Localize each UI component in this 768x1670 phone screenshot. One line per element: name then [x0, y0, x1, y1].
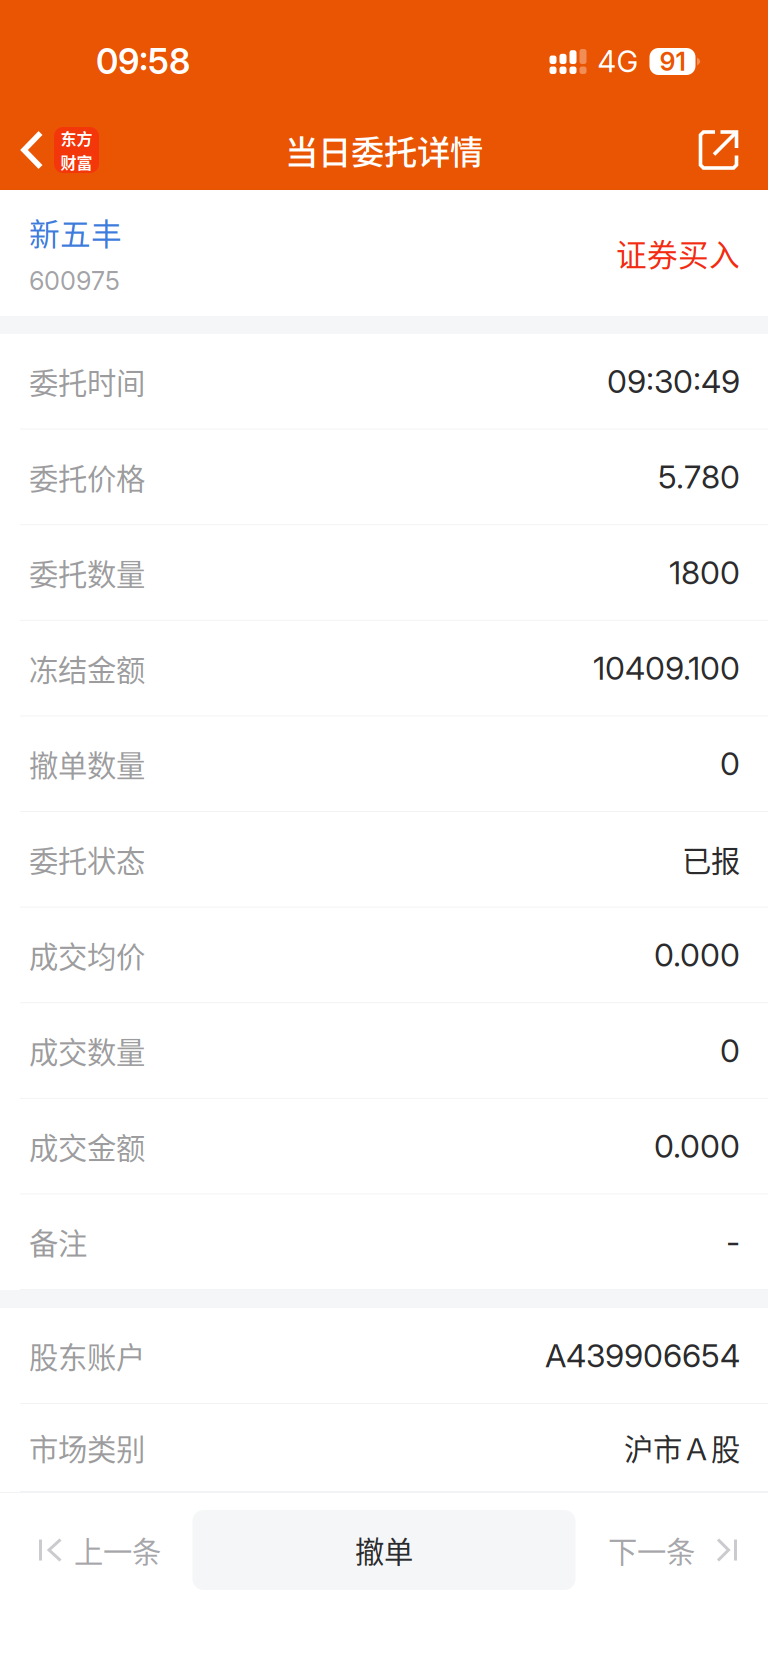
staticText: 成交均价	[29, 934, 145, 976]
staticText: 10409.100	[593, 649, 740, 687]
staticText: 沪市Ａ股	[624, 1426, 740, 1469]
staticText: 0.000	[654, 935, 740, 974]
staticText: 委托时间	[29, 360, 145, 403]
staticText: 备注	[29, 1220, 87, 1263]
staticText: 0	[720, 1031, 740, 1070]
staticText: -	[726, 1222, 740, 1261]
staticText: 撤单数量	[29, 742, 145, 785]
staticText: 股东账户	[29, 1334, 145, 1377]
button[interactable]: 下一条	[575, 1510, 768, 1590]
staticText: 成交金额	[29, 1125, 145, 1167]
button[interactable]: 撤单	[192, 1510, 575, 1590]
staticText: 东方	[60, 126, 92, 149]
staticText: 当日委托详情	[285, 126, 483, 174]
staticText: 成交数量	[29, 1029, 145, 1072]
staticText: 0.000	[654, 1127, 740, 1165]
staticText: 0	[720, 744, 740, 783]
staticText: 1800	[669, 553, 740, 592]
staticText: 新五丰	[29, 210, 122, 254]
staticText: 已报	[682, 838, 740, 881]
staticText: 4G	[597, 44, 638, 79]
staticText: 冻结金额	[29, 647, 145, 689]
staticText: 财富	[60, 150, 92, 174]
staticText: 撤单	[355, 1529, 413, 1571]
staticText: 市场类别	[29, 1426, 145, 1469]
staticText: A439906654	[545, 1336, 740, 1375]
staticText: 91	[659, 46, 685, 77]
staticText: 上一条	[74, 1529, 161, 1571]
staticText: 委托数量	[29, 551, 145, 594]
staticText: 证券买入	[616, 231, 740, 275]
staticText: 委托价格	[29, 456, 145, 498]
button[interactable]: 上一条	[0, 1510, 192, 1590]
staticText: 下一条	[608, 1529, 695, 1571]
staticText: 委托状态	[29, 838, 145, 881]
staticText: 5.780	[658, 457, 740, 496]
button[interactable]: Share	[680, 110, 768, 190]
button[interactable]: 东方	[0, 110, 109, 190]
staticText: 600975	[29, 265, 120, 296]
staticText: 09:30:49	[607, 362, 740, 401]
staticText: 09:58	[96, 40, 190, 82]
